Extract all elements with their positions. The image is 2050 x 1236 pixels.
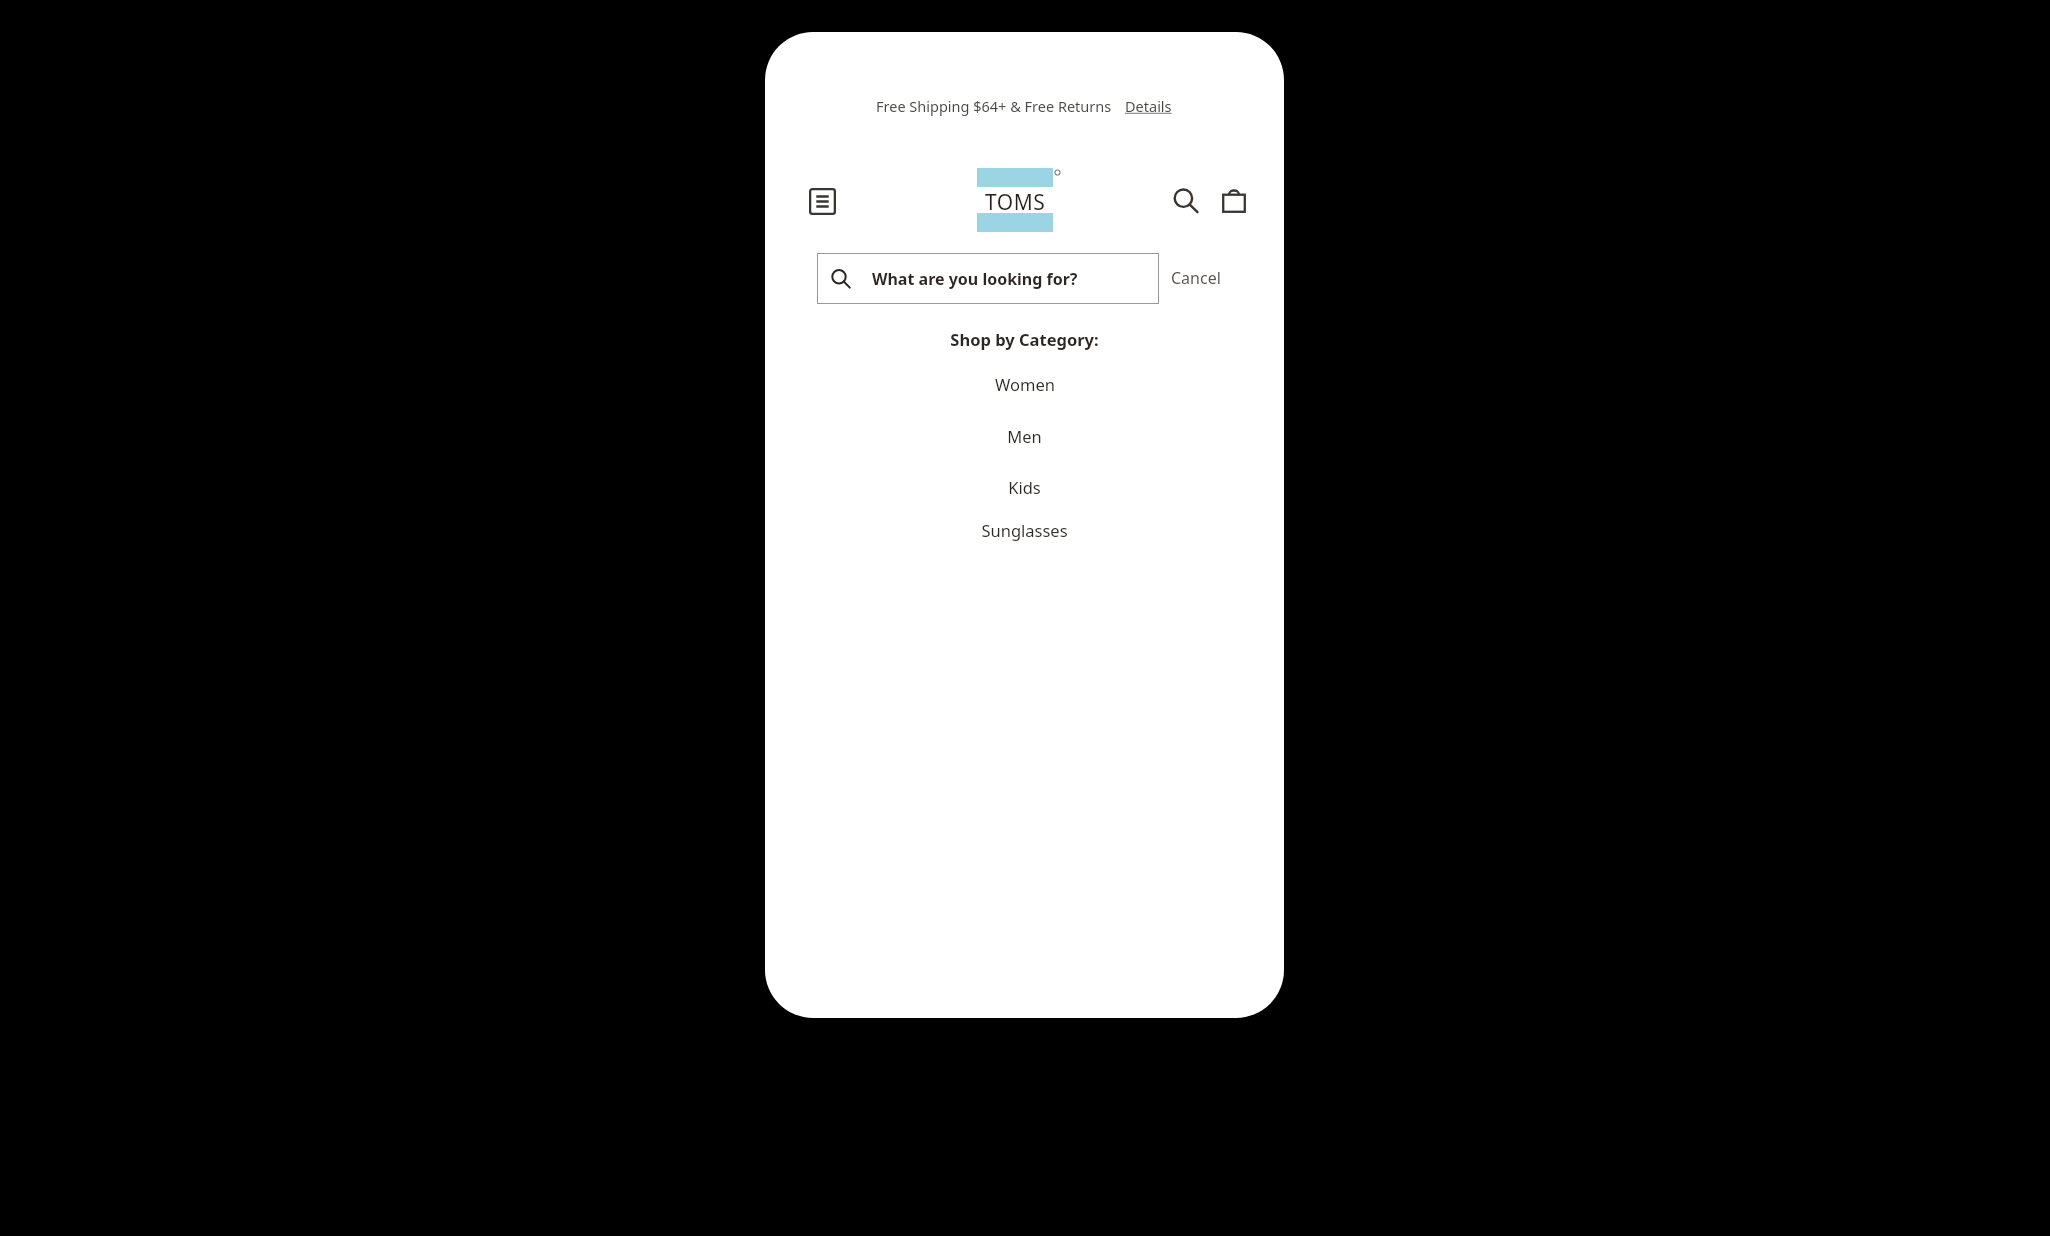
- button[interactable]: What are you looking for?: [817, 253, 1159, 304]
- button[interactable]: Open menu: [800, 179, 844, 223]
- button[interactable]: Kids: [765, 473, 1284, 501]
- button[interactable]: Details: [1124, 94, 1173, 118]
- button[interactable]: Search: [1164, 179, 1208, 223]
- button[interactable]: Women: [765, 370, 1284, 398]
- staticText: TOMS: [985, 188, 1046, 212]
- button[interactable]: Sunglasses: [765, 516, 1284, 544]
- button[interactable]: Cancel: [1159, 261, 1229, 295]
- staticText: Men: [1007, 425, 1042, 447]
- staticText: Women: [995, 373, 1055, 395]
- staticText: Kids: [1008, 476, 1041, 498]
- staticText: Details: [1125, 96, 1172, 116]
- button[interactable]: Shopping bag: [1212, 179, 1256, 223]
- staticText: Free Shipping $64+ & Free Returns: [876, 96, 1112, 116]
- button[interactable]: Men: [765, 422, 1284, 450]
- staticText: Cancel: [1171, 267, 1221, 289]
- staticText: Sunglasses: [981, 519, 1068, 541]
- staticText: Shop by Category:: [950, 328, 1099, 350]
- staticText: What are you looking for?: [872, 268, 1078, 290]
- button[interactable]: TOMS home: [977, 168, 1073, 234]
